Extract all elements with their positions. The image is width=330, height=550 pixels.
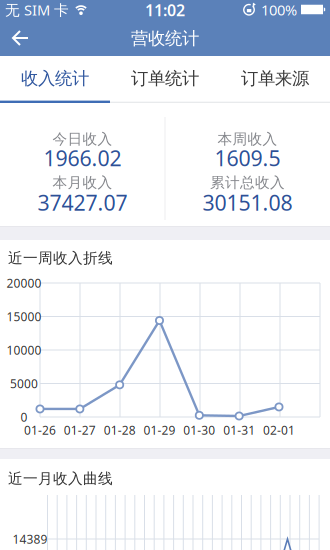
staticText: 订单统计 xyxy=(131,68,199,89)
staticText: 01-31 xyxy=(223,422,255,438)
staticText: 02-01 xyxy=(263,422,295,438)
button[interactable]: 订单来源 xyxy=(220,56,330,101)
staticText: 100% xyxy=(261,0,297,19)
button[interactable]: 订单统计 xyxy=(110,56,220,101)
staticText: 近一周收入折线 xyxy=(8,249,113,267)
staticText: 收入统计 xyxy=(21,68,89,89)
staticText: 01-28 xyxy=(104,422,136,438)
staticText: 30151.08 xyxy=(202,188,292,217)
button[interactable]: 收入统计 xyxy=(0,56,110,101)
staticText: 5000 xyxy=(10,375,38,391)
staticText: 1966.02 xyxy=(43,144,121,172)
staticText: 01-26 xyxy=(24,422,56,438)
staticText: 37427.07 xyxy=(37,188,127,217)
staticText: 14389 xyxy=(12,531,47,547)
staticText: 营收统计 xyxy=(131,28,199,49)
staticText: 15000 xyxy=(6,308,41,324)
staticText: 近一月收入曲线 xyxy=(8,469,113,487)
staticText: 本周收入 xyxy=(217,130,277,148)
staticText: 订单来源 xyxy=(241,68,309,89)
staticText: 01-30 xyxy=(183,422,215,438)
staticText: 本月收入 xyxy=(52,173,112,191)
staticText: 累计总收入 xyxy=(210,173,285,191)
staticText: 10000 xyxy=(6,342,41,358)
staticText: 1609.5 xyxy=(214,144,280,172)
staticText: 01-27 xyxy=(64,422,96,438)
staticText: 20000 xyxy=(6,275,41,291)
button[interactable]: Back xyxy=(0,20,40,56)
staticText: 01-29 xyxy=(143,422,175,438)
staticText: 0 xyxy=(20,409,27,425)
staticText: 今日收入 xyxy=(52,130,112,148)
staticText: 无 SIM 卡 xyxy=(5,0,69,19)
staticText: 11:02 xyxy=(145,0,185,21)
